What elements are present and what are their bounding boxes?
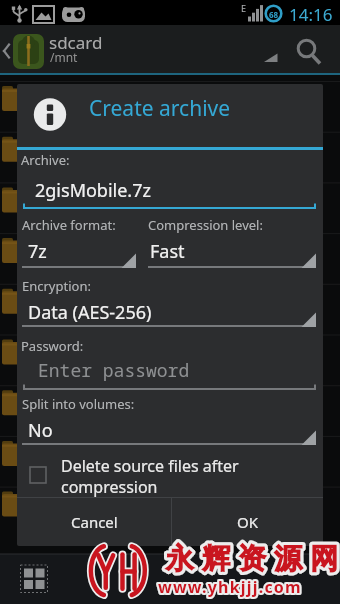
staticText: 2gisMobile.7z bbox=[35, 178, 151, 203]
button[interactable] bbox=[22, 462, 316, 492]
button[interactable] bbox=[290, 30, 330, 70]
staticText: Enter password bbox=[38, 358, 190, 383]
staticText: 7z bbox=[28, 239, 47, 264]
staticText: /mnt bbox=[50, 49, 78, 65]
staticText: Archive: bbox=[21, 151, 70, 169]
staticText: Password: bbox=[21, 337, 84, 355]
staticText: No bbox=[28, 418, 53, 443]
button[interactable] bbox=[22, 172, 316, 209]
staticText: Fast bbox=[150, 239, 185, 264]
staticText: Create archive bbox=[89, 94, 231, 123]
button[interactable] bbox=[22, 352, 316, 389]
staticText: 14:16 bbox=[289, 3, 333, 26]
button[interactable] bbox=[22, 232, 136, 268]
button[interactable]: Cancel bbox=[17, 498, 171, 546]
button[interactable]: OK bbox=[172, 498, 323, 546]
staticText: Compression level: bbox=[148, 216, 263, 234]
staticText: Cancel bbox=[71, 512, 118, 532]
staticText: Encryption: bbox=[22, 277, 91, 295]
staticText: E bbox=[241, 2, 247, 14]
staticText: www.yhkjjj.com bbox=[158, 576, 302, 598]
staticText: sdcard bbox=[49, 31, 103, 54]
button[interactable] bbox=[22, 291, 316, 327]
button[interactable] bbox=[22, 409, 316, 445]
button[interactable] bbox=[14, 558, 54, 600]
staticText: 永辉资源网 bbox=[162, 541, 340, 576]
staticText: OK bbox=[237, 512, 259, 532]
staticText: 永辉资源网 bbox=[162, 541, 340, 576]
staticText: Split into volumes: bbox=[22, 395, 135, 413]
staticText: www.yhkjjj.com bbox=[158, 576, 302, 598]
staticText: Data (AES-256) bbox=[28, 300, 152, 325]
button[interactable] bbox=[0, 25, 120, 73]
button[interactable] bbox=[148, 232, 316, 268]
staticText: Archive format: bbox=[22, 216, 116, 234]
staticText: Delete source files after compression bbox=[61, 455, 239, 498]
staticText: 68 bbox=[269, 9, 279, 19]
